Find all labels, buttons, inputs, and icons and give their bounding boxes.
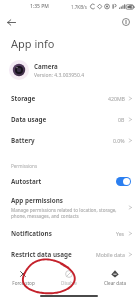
- button[interactable]: Storage: [0, 88, 138, 109]
- button[interactable]: Back: [4, 15, 18, 29]
- staticText: Version: 4.3.003950.4: [34, 72, 84, 79]
- button[interactable]: Restrict data usage: [0, 244, 138, 265]
- staticText: Data usage: [11, 115, 47, 124]
- staticText: Storage: [11, 94, 36, 103]
- button[interactable]: Data usage: [0, 109, 138, 130]
- staticText: Restrict data usage: [11, 250, 72, 259]
- button[interactable]: Clear data: [92, 270, 138, 286]
- button[interactable]: Disable: [46, 270, 92, 286]
- staticText: App permissions: [11, 196, 63, 205]
- staticText: Battery: [11, 136, 35, 145]
- staticText: Clear data: [104, 280, 126, 286]
- staticText: Yes: [116, 230, 125, 237]
- button[interactable]: Battery: [0, 130, 138, 151]
- staticText: Camera: [34, 62, 58, 70]
- staticText: 1.7KB/s: [71, 4, 87, 10]
- staticText: App info: [11, 36, 55, 51]
- staticText: Force stop: [12, 280, 35, 286]
- staticText: Notifications: [11, 229, 52, 238]
- button[interactable]: Camera: [0, 55, 138, 85]
- button[interactable]: App permissions: [0, 192, 138, 223]
- staticText: 0B: [118, 116, 125, 123]
- button[interactable]: Notifications: [0, 223, 138, 244]
- button[interactable]: Help: [119, 15, 133, 29]
- staticText: 1:35 PM: [30, 3, 49, 10]
- button[interactable]: Autostart: [0, 171, 138, 192]
- staticText: Autostart: [11, 177, 42, 186]
- staticText: Permissions: [11, 163, 38, 169]
- button[interactable]: Force stop: [0, 270, 46, 286]
- staticText: Disable: [61, 280, 77, 286]
- staticText: 0.0%: [113, 137, 125, 144]
- staticText: 420MB: [108, 95, 125, 102]
- staticText: Manage permissions related to location, …: [11, 207, 117, 219]
- staticText: Mobile data: [96, 251, 125, 258]
